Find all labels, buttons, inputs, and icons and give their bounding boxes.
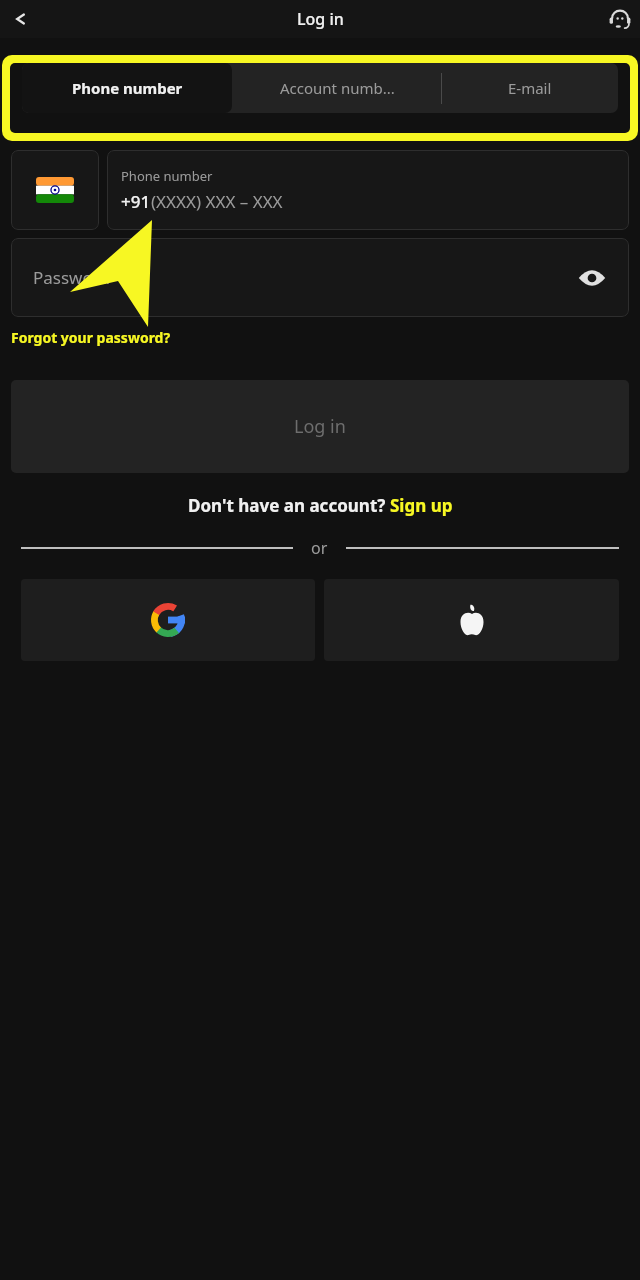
staticText: Phone number — [72, 78, 183, 98]
staticText: E-mail — [508, 78, 552, 98]
button[interactable]: Show password — [577, 263, 607, 293]
button[interactable]: Phone number — [22, 63, 232, 113]
button[interactable]: Account numb... — [232, 63, 442, 113]
button[interactable]: Select country — [11, 150, 99, 230]
button[interactable]: Sign in with Apple — [324, 579, 619, 661]
staticText: Forgot your password? — [11, 328, 171, 347]
staticText: Account numb... — [280, 78, 395, 98]
button[interactable]: Sign in with Google — [21, 579, 315, 661]
staticText: Don't have an account? — [188, 494, 390, 517]
button[interactable]: E-mail — [442, 63, 618, 113]
staticText: +91 — [121, 190, 151, 213]
button[interactable]: Phone number — [107, 150, 629, 230]
button[interactable]: Sign up — [390, 494, 453, 517]
button[interactable]: Password — [11, 238, 629, 317]
staticText: (XXXX) XXX – XXX — [151, 190, 283, 213]
button[interactable]: Log in — [11, 380, 629, 473]
button[interactable]: Forgot your password? — [11, 328, 171, 347]
staticText: or — [311, 537, 328, 559]
staticText: Phone number — [121, 167, 213, 185]
staticText: Log in — [297, 8, 344, 30]
staticText: Sign up — [390, 494, 453, 517]
button[interactable]: Back — [4, 5, 32, 33]
staticText: Log in — [294, 414, 346, 439]
button[interactable]: Customer support — [607, 6, 633, 32]
staticText: Password — [33, 266, 110, 289]
